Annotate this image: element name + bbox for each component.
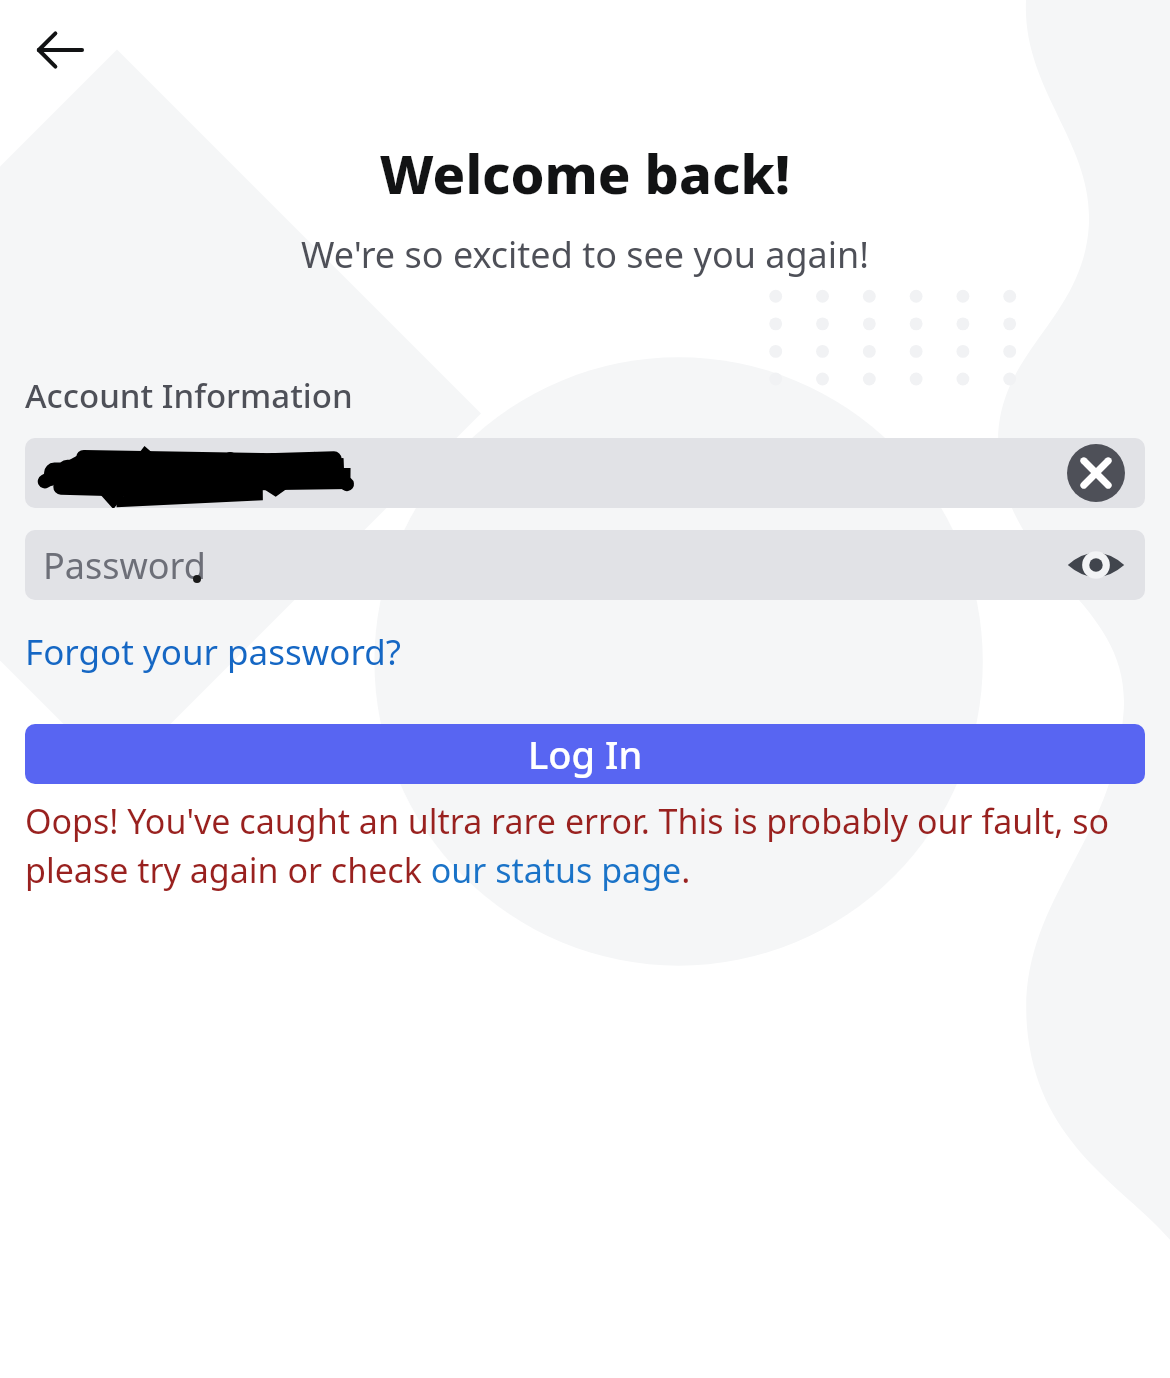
button[interactable]: Back <box>28 18 92 82</box>
staticText: Welcome back! <box>0 136 1170 210</box>
button[interactable]: Forgot your password? <box>25 624 401 680</box>
staticText: Forgot your password? <box>25 628 401 676</box>
staticText: Account Information <box>25 373 353 418</box>
button[interactable]: Log In <box>25 724 1145 784</box>
button[interactable]: Oops! You've caught an ultra rare error.… <box>25 798 1145 893</box>
staticText: Log In <box>528 728 643 780</box>
staticText: Oops! You've caught an ultra rare error.… <box>25 798 1145 893</box>
button[interactable]: Clear text <box>1065 442 1127 504</box>
staticText: s <box>43 450 60 496</box>
staticText: Password <box>43 541 206 590</box>
button[interactable]: s <box>25 438 1145 508</box>
button[interactable]: Password <box>25 530 1145 600</box>
button[interactable]: Show password <box>1065 534 1127 596</box>
staticText: We're so excited to see you again! <box>0 230 1170 279</box>
